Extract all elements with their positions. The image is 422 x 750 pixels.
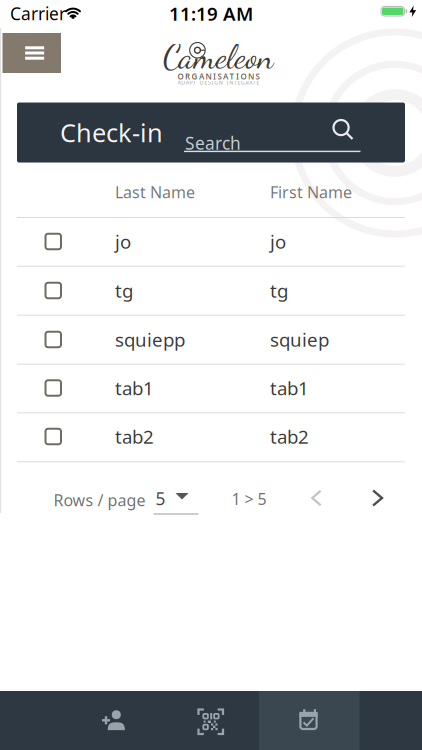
button[interactable]: Next page (362, 479, 394, 517)
button[interactable]: Search (184, 102, 362, 154)
staticText: jo (115, 229, 131, 254)
staticText: First Name (270, 181, 352, 203)
staticText: tab1 (270, 376, 309, 400)
button[interactable]: Menu (2, 33, 61, 73)
staticText: ADAPT DESIGN INTEGRATE (178, 79, 259, 86)
staticText: Last Name (115, 181, 195, 203)
staticText: tg (115, 278, 133, 303)
staticText: tg (270, 278, 288, 303)
staticText: squiepp (115, 327, 185, 352)
staticText: Check-in (60, 116, 163, 149)
staticText: 1 > 5 (231, 488, 266, 509)
button[interactable]: Previous page (300, 479, 332, 516)
staticText: Carrier (10, 2, 66, 25)
button[interactable]: Scan QR code (161, 691, 260, 750)
staticText: tab2 (115, 424, 154, 449)
button[interactable]: Select jo (44, 233, 62, 250)
button[interactable]: Select squiepp (44, 331, 62, 348)
staticText: tab2 (270, 424, 309, 449)
button[interactable]: Select tg (44, 282, 62, 299)
staticText: 11:19 AM (169, 1, 253, 26)
staticText: ORGANISATIONS (177, 71, 259, 82)
button[interactable]: Rows per page (153, 490, 198, 515)
button[interactable]: Select tab2 (44, 428, 62, 445)
staticText: squiep (270, 327, 329, 352)
staticText: Cameleon (163, 37, 274, 77)
button[interactable]: Select tab1 (44, 379, 62, 397)
staticText: Rows / page (53, 489, 145, 511)
staticText: 5 (155, 487, 165, 510)
button[interactable]: Check-in (259, 691, 359, 750)
staticText: jo (270, 229, 286, 254)
staticText: tab1 (115, 376, 154, 400)
button[interactable]: Add attendee (62, 691, 161, 750)
staticText: Search (185, 131, 241, 154)
